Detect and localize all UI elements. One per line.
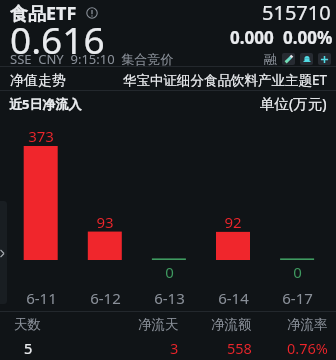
staticText: 373 xyxy=(28,126,54,146)
staticText: 净流天 xyxy=(138,316,179,333)
staticText: 单位(万元) xyxy=(260,93,327,113)
staticText: 0.76% xyxy=(287,338,328,358)
staticText: 食品ETF xyxy=(10,1,77,26)
staticText: 近5日净流入 xyxy=(9,95,82,113)
button[interactable]: Alerts xyxy=(300,53,313,65)
staticText: 6-12 xyxy=(90,288,121,308)
staticText: 0.616 xyxy=(10,14,105,64)
staticText: 天数 xyxy=(14,316,41,333)
staticText: 华宝中证细分食品饮料产业主题ET xyxy=(123,71,328,89)
button[interactable]: Expand panel xyxy=(0,201,7,304)
staticText: 5 xyxy=(24,338,33,358)
staticText: 0.00% xyxy=(283,26,333,49)
button[interactable]: Info xyxy=(85,6,98,19)
staticText: 净流额 xyxy=(211,316,252,333)
button[interactable]: Edit xyxy=(282,53,295,65)
staticText: 净流率 xyxy=(287,316,328,333)
button[interactable]: Add xyxy=(318,53,331,65)
staticText: 6-11 xyxy=(26,288,57,308)
staticText: 0.000 xyxy=(230,26,274,49)
staticText: SSE CNY 9:15:10 集合竞价 xyxy=(10,50,174,68)
staticText: 92 xyxy=(224,212,242,232)
staticText: 0 xyxy=(293,262,302,282)
staticText: 515710 xyxy=(262,0,331,26)
staticText: 558 xyxy=(227,338,252,358)
staticText: 净值走势 xyxy=(10,72,66,90)
staticText: 6-14 xyxy=(218,288,249,308)
staticText: 93 xyxy=(96,212,114,232)
staticText: 0 xyxy=(165,262,174,282)
staticText: 6-17 xyxy=(282,288,313,308)
staticText: 6-13 xyxy=(154,288,185,308)
staticText: 融 xyxy=(264,51,277,67)
staticText: 3 xyxy=(170,338,179,358)
